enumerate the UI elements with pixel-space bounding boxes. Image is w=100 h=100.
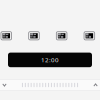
button[interactable]: Layout option — [82, 30, 96, 42]
button[interactable]: Layout option — [27, 30, 41, 42]
button[interactable]: Scroll up — [86, 79, 100, 91]
button[interactable]: Layout option — [55, 30, 69, 42]
staticText: 12:00 — [41, 56, 59, 64]
button[interactable]: Scroll down — [0, 79, 14, 91]
button[interactable]: Layout option — [0, 30, 13, 42]
